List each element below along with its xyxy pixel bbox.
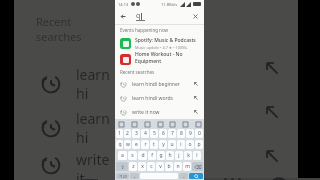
button[interactable]: a xyxy=(118,151,127,160)
button[interactable]: Insert search xyxy=(193,81,199,87)
button[interactable]: h xyxy=(166,151,174,160)
staticText: p xyxy=(197,141,201,148)
button[interactable]: Insert search xyxy=(262,146,282,166)
button[interactable]: Insert search xyxy=(262,58,282,78)
button[interactable]: 1 xyxy=(116,129,123,138)
staticText: ⇧ xyxy=(120,164,125,170)
button[interactable]: g xyxy=(157,151,165,160)
button[interactable]: Insert search xyxy=(262,102,282,122)
staticText: 5 xyxy=(153,130,156,137)
button[interactable]: s xyxy=(128,151,137,160)
staticText: Home Workout - No Equipment xyxy=(135,51,199,65)
button[interactable]: 9 xyxy=(186,129,194,138)
button[interactable]: Search xyxy=(189,173,203,179)
staticText: s xyxy=(131,152,134,159)
staticText: y xyxy=(162,141,165,148)
button[interactable]: ⇧ xyxy=(116,162,128,171)
staticText: 4 xyxy=(144,130,147,137)
staticText: write it xyxy=(76,150,115,180)
staticText: 2 xyxy=(126,130,129,137)
button[interactable]: Clipboard xyxy=(169,121,175,127)
staticText: u xyxy=(170,141,174,148)
button[interactable]: j xyxy=(175,151,183,160)
button[interactable]: m xyxy=(183,162,191,171)
button[interactable]: 2 xyxy=(124,129,131,138)
staticText: learn hindi beginner xyxy=(132,81,180,88)
staticText: c xyxy=(150,163,153,170)
button[interactable]: e xyxy=(132,140,140,149)
button[interactable]: o xyxy=(186,140,194,149)
staticText: 3 xyxy=(135,130,138,137)
button[interactable]: q xyxy=(116,140,123,149)
staticText: b xyxy=(167,163,171,170)
button[interactable]: y xyxy=(159,140,167,149)
button[interactable]: n xyxy=(174,162,182,171)
staticText: 9 xyxy=(189,130,192,137)
button[interactable]: z xyxy=(129,162,137,171)
button[interactable]: c xyxy=(147,162,155,171)
button[interactable]: w xyxy=(124,140,131,149)
staticText: f xyxy=(151,152,153,159)
button[interactable]: Mic xyxy=(195,121,201,127)
staticText: g xyxy=(159,152,163,159)
button[interactable]: ⌫ xyxy=(192,162,203,171)
button[interactable]: b xyxy=(165,162,173,171)
button[interactable]: Clear xyxy=(191,12,200,21)
button[interactable]: t xyxy=(150,140,158,149)
staticText: learn hindi words xyxy=(132,95,173,102)
staticText: 8 xyxy=(180,130,183,137)
button[interactable]: More xyxy=(182,121,188,127)
button[interactable]: 5 xyxy=(150,129,158,138)
button[interactable]: i xyxy=(177,140,185,149)
button[interactable]: Insert search xyxy=(193,109,199,115)
button[interactable]: 6 xyxy=(159,129,167,138)
staticText: , xyxy=(134,173,136,179)
button[interactable]: Insert search xyxy=(193,95,199,101)
staticText: z xyxy=(132,163,135,170)
button[interactable]: u xyxy=(168,140,176,149)
staticText: Recent searches xyxy=(120,69,155,75)
button[interactable]: learn hi xyxy=(14,106,115,150)
button[interactable]: 0 xyxy=(195,129,203,138)
button[interactable]: , xyxy=(130,173,139,179)
button[interactable]: p xyxy=(195,140,203,149)
button[interactable]: learn hi xyxy=(14,62,115,106)
button[interactable]: learn hindi beginner xyxy=(115,77,204,91)
staticText: 14:13 xyxy=(118,2,129,7)
button[interactable]: Sticker xyxy=(144,121,150,127)
button[interactable]: f xyxy=(148,151,156,160)
button[interactable]: Spotify: Music & Podcasts xyxy=(115,35,204,51)
button[interactable]: . xyxy=(179,173,188,179)
staticText: d xyxy=(141,152,145,159)
button[interactable]: x xyxy=(138,162,146,171)
button[interactable]: write it now xyxy=(115,105,204,119)
button[interactable]: learn hindi words xyxy=(115,91,204,105)
button[interactable]: 7 xyxy=(168,129,176,138)
button[interactable]: Settings xyxy=(157,121,163,127)
button[interactable]: l xyxy=(193,151,201,160)
button[interactable]: 3 xyxy=(132,129,140,138)
button[interactable]: r xyxy=(141,140,149,149)
button[interactable]: Voice input xyxy=(269,178,289,180)
button[interactable]: GIF xyxy=(131,121,137,127)
staticText: t xyxy=(153,141,155,148)
staticText: Recent searches xyxy=(36,14,115,44)
button[interactable]: 8 xyxy=(177,129,185,138)
button[interactable]: Back xyxy=(119,12,128,21)
button[interactable]: k xyxy=(184,151,192,160)
button[interactable]: v xyxy=(156,162,164,171)
staticText: Events happening now xyxy=(120,27,169,33)
button[interactable]: Home Workout - No Equipment xyxy=(115,51,204,67)
button[interactable]: 4 xyxy=(141,129,149,138)
staticText: a xyxy=(121,152,124,159)
button[interactable]: Back xyxy=(118,121,124,127)
button[interactable]: write it xyxy=(14,150,115,180)
staticText: learn hi xyxy=(76,109,115,147)
button[interactable]: d xyxy=(138,151,147,160)
staticText: ?123 xyxy=(119,174,127,179)
staticText: Music update • 4.7 ★ • 100M+ xyxy=(135,45,188,50)
staticText: 6 xyxy=(162,130,165,137)
button[interactable]: ?123 xyxy=(116,173,129,179)
